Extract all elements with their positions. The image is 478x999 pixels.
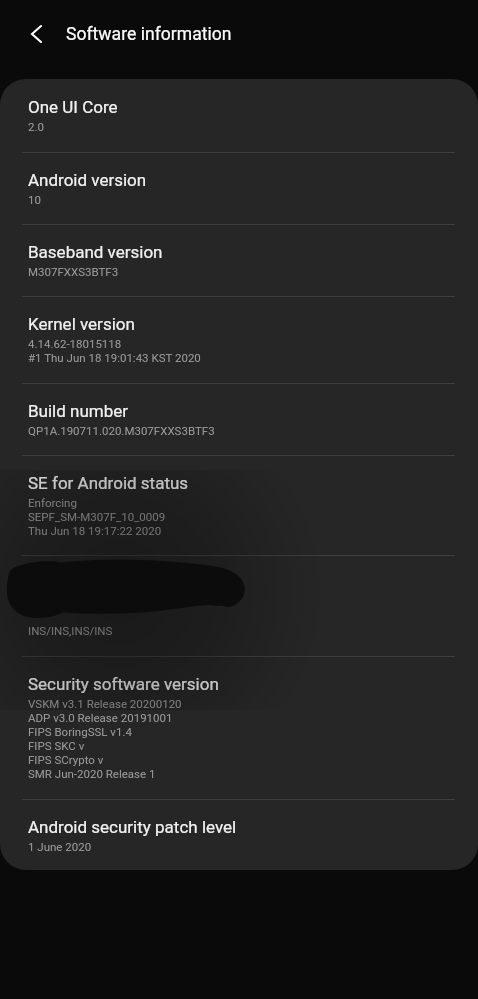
button[interactable]: Baseband version bbox=[0, 224, 478, 296]
button[interactable]: Android version bbox=[0, 152, 478, 224]
staticText: Baseband version bbox=[28, 243, 163, 262]
staticText: One UI Core bbox=[28, 98, 118, 117]
button[interactable]: SE for Android status bbox=[0, 455, 478, 555]
staticText: #1 Thu Jun 18 19:01:43 KST 2020 bbox=[28, 351, 201, 365]
staticText: INS/INS,INS/INS bbox=[28, 624, 113, 638]
button[interactable]: Kernel version bbox=[0, 296, 478, 383]
button[interactable]: Android security patch level bbox=[0, 799, 478, 870]
button[interactable]: One UI Core bbox=[0, 79, 478, 152]
staticText: ADP v3.0 Release 20191001 bbox=[28, 711, 173, 725]
staticText: 1 June 2020 bbox=[28, 840, 92, 854]
staticText: Build number bbox=[28, 402, 129, 421]
staticText: Android security patch level bbox=[28, 818, 237, 837]
staticText: Security software version bbox=[28, 675, 219, 694]
staticText: M307FXXS3BTF3 bbox=[28, 265, 119, 279]
staticText: VSKM v3.1 Release 20200120 bbox=[28, 697, 182, 711]
staticText: 2.0 bbox=[28, 120, 44, 134]
staticText: SMR Jun-2020 Release 1 bbox=[28, 767, 156, 781]
button[interactable]: Build number bbox=[0, 383, 478, 455]
button[interactable]: Knox version bbox=[0, 555, 478, 656]
staticText: Software information bbox=[66, 24, 232, 45]
staticText: Thu Jun 18 19:17:22 2020 bbox=[28, 524, 162, 538]
staticText: Android version bbox=[28, 171, 147, 190]
staticText: FIPS SKC v bbox=[28, 739, 85, 753]
staticText: 4.14.62-18015118 bbox=[28, 337, 122, 351]
staticText: Enforcing bbox=[28, 496, 77, 510]
staticText: SEPF_SM-M307F_10_0009 bbox=[28, 510, 166, 524]
button[interactable]: Security software version bbox=[0, 656, 478, 799]
button[interactable]: Navigate up bbox=[14, 12, 58, 56]
staticText bbox=[28, 610, 31, 624]
staticText: FIPS SCrypto v bbox=[28, 753, 104, 767]
staticText: 10 bbox=[28, 193, 41, 207]
staticText: QP1A.190711.020.M307FXXS3BTF3 bbox=[28, 424, 215, 438]
staticText: FIPS BoringSSL v1.4 bbox=[28, 725, 132, 739]
staticText: Kernel version bbox=[28, 315, 135, 334]
staticText: SE for Android status bbox=[28, 474, 189, 493]
